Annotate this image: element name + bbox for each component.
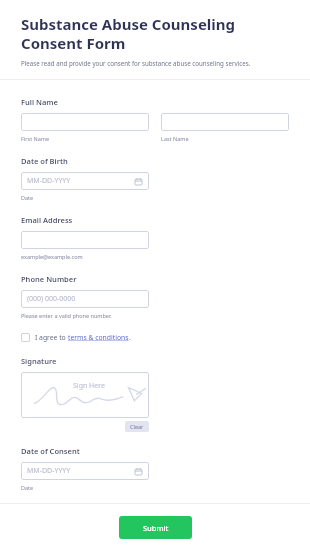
button[interactable] (161, 113, 289, 131)
button[interactable]: Submit (119, 516, 192, 539)
button[interactable]: terms & conditions (68, 333, 129, 342)
staticText: Email Address (21, 215, 73, 225)
staticText: First Name (21, 135, 50, 142)
staticText: Clear (130, 423, 144, 430)
button[interactable]: I agree to (21, 333, 131, 342)
staticText: MM-DD-YYYY (27, 466, 71, 476)
staticText: Full Name (21, 97, 58, 107)
staticText: (000) 000-0000 (27, 294, 76, 304)
staticText: Last Name (161, 135, 189, 142)
button[interactable]: MM-DD-YYYY (21, 172, 149, 190)
staticText: Please enter a valid phone number. (21, 312, 112, 319)
button[interactable] (21, 113, 149, 131)
button[interactable]: Clear (125, 421, 149, 432)
button[interactable]: MM-DD-YYYY (21, 462, 149, 480)
staticText: Date of Birth (21, 156, 68, 166)
staticText: Date (21, 484, 34, 491)
staticText: I agree to (35, 333, 68, 342)
button[interactable]: Signature pad, sign here (21, 372, 149, 418)
staticText: Phone Number (21, 274, 77, 284)
staticText: example@example.com (21, 253, 83, 260)
staticText: Substance Abuse Counseling Consent Form (21, 14, 289, 53)
staticText: MM-DD-YYYY (27, 176, 71, 186)
staticText: Signature (21, 356, 57, 366)
staticText: Please read and provide your consent for… (21, 59, 251, 67)
staticText: Sign Here (73, 381, 105, 391)
staticText: Date (21, 194, 34, 201)
button[interactable] (21, 231, 149, 249)
button[interactable]: (000) 000-0000 (21, 290, 149, 308)
staticText: Submit (143, 523, 169, 533)
staticText: Date of Consent (21, 446, 80, 456)
staticText: . (129, 333, 131, 342)
